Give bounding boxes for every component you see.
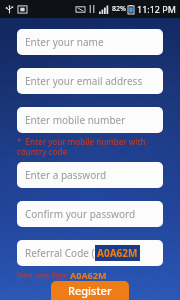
staticText: 82% (112, 4, 126, 14)
other: Notification (18, 5, 27, 14)
staticText: Referral Code ( (25, 246, 95, 260)
button[interactable]: Register (51, 281, 129, 300)
staticText: A0A62M (70, 269, 107, 281)
other: USB connected (5, 5, 14, 14)
staticText: Enter your email address (25, 74, 143, 88)
staticText: Enter mobile number (25, 113, 126, 127)
button[interactable]: Enter your name (17, 29, 163, 55)
staticText: Enter your name (25, 35, 104, 49)
staticText: বিস্তার কোড নিযুক্ত (17, 269, 70, 281)
button[interactable]: Confirm your password (17, 201, 163, 227)
staticText: Enter a password (25, 168, 107, 182)
staticText: A0A62M (97, 246, 138, 260)
staticText: * Enter your mobile number with country … (17, 136, 163, 157)
button[interactable]: Enter a password (17, 162, 163, 188)
staticText: Register (68, 283, 112, 298)
staticText: Confirm your password (25, 207, 136, 221)
button[interactable]: Enter your email address (17, 68, 163, 94)
staticText: 11:12 PM (137, 3, 176, 15)
button[interactable]: Referral Code ( (17, 240, 163, 266)
button[interactable]: Enter mobile number (17, 107, 163, 133)
